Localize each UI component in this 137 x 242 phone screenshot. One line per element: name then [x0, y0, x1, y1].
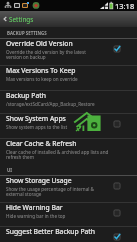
staticText: Max Versions To Keep: [6, 66, 76, 75]
staticText: Show the usage percentage of internal & …: [6, 186, 94, 198]
staticText: Clear cache of installed & archived app …: [6, 149, 109, 161]
button[interactable]: Override Old Version: [0, 39, 137, 65]
staticText: Max versions to keep on override: [6, 76, 78, 82]
staticText: Clear Cache & Refresh: [6, 139, 77, 148]
button[interactable]: Max Versions To Keep: [0, 66, 137, 90]
staticText: Show system apps to the list: [6, 124, 68, 130]
staticText: Override the old version by the latest v…: [6, 49, 86, 61]
staticText: Override Old Version: [6, 39, 73, 48]
staticText: Settings: [9, 15, 34, 24]
staticText: UI: [7, 167, 13, 173]
button[interactable]: Clear Cache & Refresh: [0, 139, 137, 162]
button[interactable]: Show Storage Usage: [0, 176, 137, 202]
staticText: /storage/extSdCard/App_Backup_Restore: [6, 101, 95, 107]
staticText: Show System Apps: [6, 114, 66, 123]
staticText: BACKUP SETTINGS: [7, 30, 47, 36]
staticText: Hide Warning Bar: [6, 203, 63, 212]
button[interactable]: Suggest Better Backup Path: [0, 227, 137, 242]
button[interactable]: Hide Warning Bar: [0, 203, 137, 226]
staticText: Backup Path: [6, 91, 46, 100]
other: Back: [0, 11, 9, 27]
button[interactable]: Backup Path: [0, 91, 137, 113]
staticText: Suggest Better Backup Path: [6, 227, 96, 236]
button[interactable]: Back: [0, 11, 137, 27]
staticText: Show Storage Usage: [6, 176, 72, 185]
staticText: 13:18: [115, 1, 135, 11]
button[interactable]: Show System Apps: [0, 114, 137, 138]
staticText: Hide warning bar in the top: [6, 213, 66, 219]
